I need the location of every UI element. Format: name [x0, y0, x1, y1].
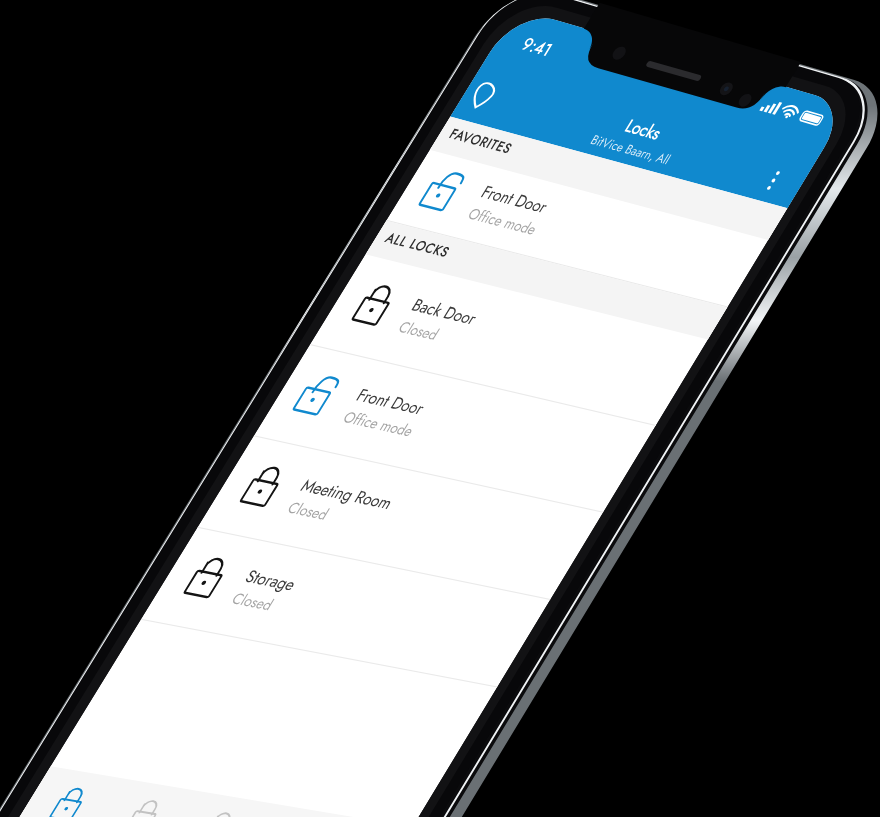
button[interactable]: Storage — [0, 481, 375, 565]
button[interactable]: Front Door — [0, 313, 375, 397]
button[interactable]: Back Door — [0, 229, 375, 313]
button[interactable]: Meeting Room — [0, 397, 375, 481]
button[interactable]: Tab — [0, 698, 75, 754]
button[interactable]: Tab — [75, 698, 150, 754]
